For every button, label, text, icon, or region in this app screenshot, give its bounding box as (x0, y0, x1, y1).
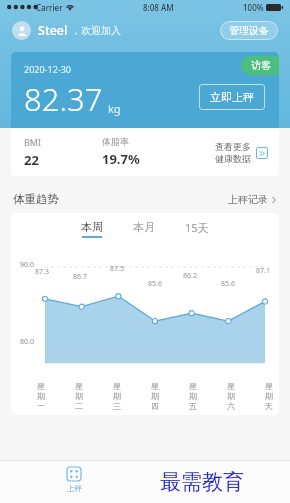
staticText: 期 (37, 391, 45, 401)
staticText: ，欢迎加入 (71, 24, 121, 37)
staticText: Steel (38, 22, 68, 39)
staticText: 期 (113, 391, 121, 401)
staticText: 19.7% (102, 150, 140, 168)
staticText: 星 (151, 381, 159, 391)
staticText: 86.2 (183, 271, 197, 281)
staticText: 8:08 AM (143, 2, 174, 13)
staticText: 80.0 (20, 337, 34, 347)
staticText: 访客 (251, 59, 271, 72)
staticText: 82.37 (24, 78, 103, 120)
button[interactable]: 15天 (181, 217, 213, 242)
staticText: 二 (75, 401, 83, 411)
staticText: 86.7 (73, 272, 87, 282)
button[interactable]: 上秤 (56, 466, 92, 493)
staticText: 85.6 (148, 279, 162, 289)
staticText: 期 (75, 391, 83, 401)
button[interactable]: 查看更多 (215, 141, 268, 164)
staticText: 87.3 (35, 267, 49, 277)
staticText: 2020-12-30 (24, 63, 71, 75)
staticText: 期 (227, 391, 235, 401)
staticText: 一 (37, 401, 45, 411)
staticText: 查看更多 (215, 141, 251, 152)
staticText: 87.1 (256, 266, 270, 276)
staticText: 90.0 (20, 260, 34, 270)
staticText: 体重趋势 (13, 192, 59, 206)
staticText: 星 (189, 381, 197, 391)
button[interactable]: 上秤记录 (228, 193, 277, 206)
button[interactable]: 本月 (129, 217, 159, 241)
staticText: 上秤记录 (228, 193, 268, 206)
staticText: 上秤 (67, 484, 82, 493)
staticText: 87.5 (110, 264, 124, 274)
staticText: 健康数据 (215, 153, 251, 164)
staticText: 五 (189, 401, 197, 411)
staticText: 本月 (133, 220, 155, 234)
staticText: 星 (75, 381, 83, 391)
staticText: 天 (265, 401, 273, 411)
staticText: 期 (151, 391, 159, 401)
staticText: Carrier (36, 2, 63, 13)
staticText: 期 (189, 391, 197, 401)
staticText: 星 (265, 381, 273, 391)
staticText: 六 (227, 401, 235, 411)
button[interactable]: 访客 (241, 56, 279, 75)
staticText: 四 (151, 401, 159, 411)
staticText: 本周 (81, 220, 103, 234)
staticText: 15天 (185, 220, 209, 235)
staticText: 立即上秤 (210, 90, 254, 104)
staticText: kg (108, 101, 121, 116)
staticText: 三 (113, 401, 121, 411)
staticText: 体脂率 (102, 136, 129, 147)
staticText: 100% (243, 2, 264, 13)
button[interactable]: 管理设备 (220, 21, 278, 40)
staticText: 最需教育 (160, 469, 244, 495)
button[interactable]: 本周 (77, 217, 107, 241)
staticText: 星 (113, 381, 121, 391)
staticText: BMI (24, 136, 42, 148)
staticText: 星 (37, 381, 45, 391)
staticText: 星 (227, 381, 235, 391)
staticText: 85.6 (221, 279, 235, 289)
staticText: 22 (24, 151, 39, 169)
staticText: 管理设备 (229, 24, 269, 37)
staticText: 期 (265, 391, 273, 401)
button[interactable]: 立即上秤 (199, 84, 265, 110)
